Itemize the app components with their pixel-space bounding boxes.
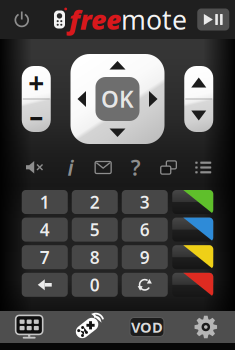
button[interactable]: Info [62,155,78,179]
staticText: 7 [40,246,50,269]
button[interactable]: 5 [72,218,118,242]
button[interactable]: VOD [117,311,176,343]
button[interactable]: 0 [72,273,118,297]
button[interactable]: + [22,66,51,99]
staticText: 1 [40,190,50,213]
button[interactable]: Settings [176,311,235,343]
staticText: mote [121,2,187,37]
staticText: 8 [90,246,100,269]
staticText: 3 [140,190,150,213]
button[interactable] [184,66,213,99]
staticText: 4 [40,218,50,241]
button[interactable]: Colour key [172,273,213,297]
button[interactable]: Mail [93,155,113,179]
button[interactable]: Remote [59,311,117,343]
button[interactable]: TV guide [0,311,59,343]
button[interactable]: Power [6,3,38,35]
button[interactable]: 9 [122,245,168,269]
staticText: 9 [140,246,150,269]
staticText: ? [131,153,141,182]
button[interactable] [184,99,213,132]
staticText: OK [101,84,134,114]
button[interactable]: 2 [72,190,118,214]
staticText: i [67,153,73,182]
staticText: 6 [140,218,150,241]
button[interactable]: 1 [22,190,68,214]
staticText: 2 [90,190,100,213]
button[interactable]: Help [128,155,144,179]
button[interactable] [122,273,168,297]
button[interactable]: 7 [22,245,68,269]
staticText: 0 [90,273,100,296]
button[interactable]: Mute [22,155,48,179]
button[interactable]: 4 [22,218,68,242]
button[interactable]: List [193,155,213,179]
button[interactable]: OK [95,77,139,121]
button[interactable]: Colour key [172,245,213,269]
button[interactable]: 3 [122,190,168,214]
button[interactable]: Colour key [172,218,213,242]
staticText: – [29,97,43,134]
staticText: + [28,64,44,101]
button[interactable] [22,273,68,297]
button[interactable]: Play or pause [197,8,229,30]
staticText: 5 [90,218,100,241]
staticText: free [69,2,121,37]
button[interactable]: 6 [122,218,168,242]
staticText: VOD [131,317,163,337]
button[interactable]: Windows [159,155,179,179]
button[interactable]: – [22,99,51,132]
button[interactable]: 8 [72,245,118,269]
button[interactable]: Colour key [172,190,213,214]
